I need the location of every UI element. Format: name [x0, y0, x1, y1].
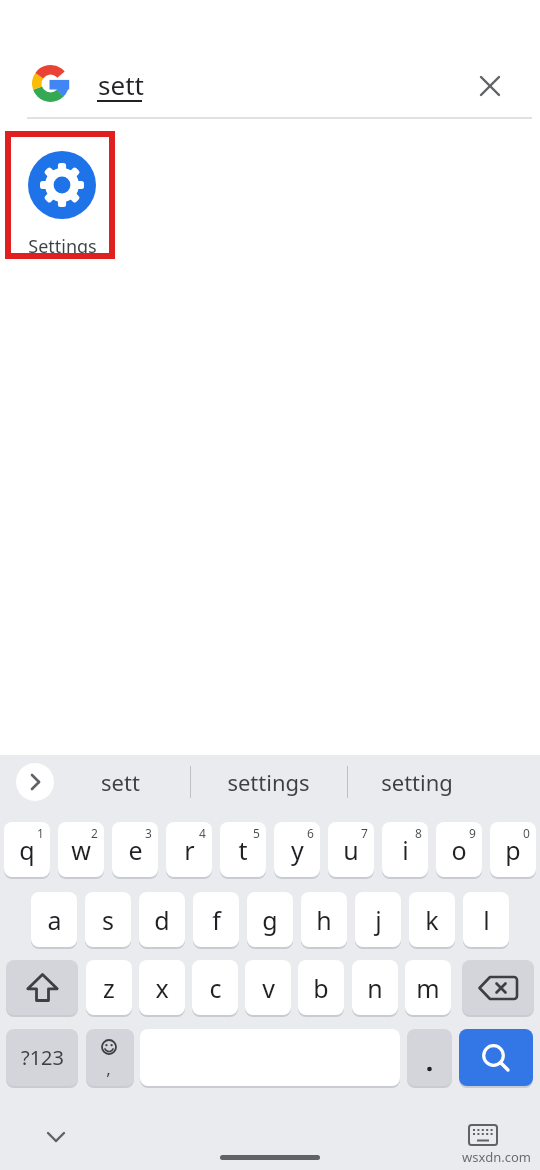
- button[interactable]: q: [4, 822, 50, 877]
- staticText: d: [154, 903, 170, 937]
- button[interactable]: ?123: [6, 1029, 78, 1086]
- button[interactable]: setting: [347, 760, 487, 804]
- staticText: q: [19, 833, 35, 867]
- staticText: z: [103, 971, 115, 1005]
- button[interactable]: [31, 64, 70, 104]
- staticText: 5: [253, 825, 260, 841]
- staticText: 0: [523, 825, 530, 841]
- staticText: f: [212, 903, 221, 937]
- button[interactable]: p: [490, 822, 536, 877]
- staticText: setting: [381, 767, 453, 797]
- button[interactable]: n: [352, 960, 398, 1015]
- button[interactable]: b: [298, 960, 344, 1015]
- staticText: ,: [106, 1057, 111, 1080]
- button[interactable]: r: [166, 822, 212, 877]
- staticText: y: [291, 833, 304, 867]
- staticText: c: [209, 971, 222, 1005]
- button[interactable]: x: [139, 960, 185, 1015]
- staticText: sett: [98, 67, 144, 102]
- staticText: ?123: [21, 1044, 64, 1071]
- button[interactable]: [44, 1130, 68, 1144]
- button[interactable]: e: [112, 822, 158, 877]
- staticText: o: [451, 833, 467, 867]
- staticText: e: [128, 833, 143, 867]
- button[interactable]: i: [382, 822, 428, 877]
- staticText: g: [262, 903, 278, 937]
- button[interactable]: t: [220, 822, 266, 877]
- button[interactable]: d: [139, 892, 185, 947]
- staticText: 4: [199, 825, 206, 841]
- button[interactable]: [28, 151, 96, 219]
- staticText: k: [425, 903, 439, 937]
- button[interactable]: m: [405, 960, 451, 1015]
- staticText: n: [367, 971, 383, 1005]
- button[interactable]: [462, 960, 534, 1015]
- staticText: 3: [145, 825, 152, 841]
- button[interactable]: a: [31, 892, 77, 947]
- staticText: 7: [361, 825, 368, 841]
- button[interactable]: j: [355, 892, 401, 947]
- staticText: l: [483, 903, 490, 937]
- button[interactable]: l: [463, 892, 509, 947]
- button[interactable]: k: [409, 892, 455, 947]
- staticText: sett: [101, 767, 140, 797]
- staticText: v: [262, 971, 275, 1005]
- button[interactable]: y: [274, 822, 320, 877]
- staticText: 9: [469, 825, 476, 841]
- staticText: w: [71, 833, 91, 867]
- staticText: b: [313, 971, 329, 1005]
- staticText: settings: [227, 767, 310, 797]
- staticText: t: [238, 833, 248, 867]
- button[interactable]: ,: [86, 1029, 134, 1086]
- button[interactable]: h: [301, 892, 347, 947]
- button[interactable]: sett: [70, 760, 170, 804]
- button[interactable]: g: [247, 892, 293, 947]
- staticText: h: [316, 903, 332, 937]
- button[interactable]: c: [192, 960, 238, 1015]
- staticText: p: [505, 833, 521, 867]
- button[interactable]: [468, 1124, 498, 1147]
- staticText: u: [343, 833, 359, 867]
- staticText: wsxdn.com: [462, 1148, 531, 1166]
- staticText: j: [375, 903, 382, 937]
- staticText: x: [155, 971, 169, 1005]
- button[interactable]: z: [86, 960, 132, 1015]
- button[interactable]: u: [328, 822, 374, 877]
- staticText: r: [184, 833, 195, 867]
- staticText: 6: [307, 825, 314, 841]
- button[interactable]: [459, 1029, 533, 1086]
- staticText: 8: [415, 825, 422, 841]
- button[interactable]: v: [245, 960, 291, 1015]
- staticText: i: [402, 833, 409, 867]
- staticText: 2: [91, 825, 98, 841]
- button[interactable]: [16, 763, 54, 801]
- button[interactable]: o: [436, 822, 482, 877]
- staticText: 1: [37, 825, 44, 841]
- button[interactable]: f: [193, 892, 239, 947]
- button[interactable]: [6, 960, 78, 1015]
- button[interactable]: settings: [198, 760, 338, 804]
- button[interactable]: w: [58, 822, 104, 877]
- button[interactable]: [478, 74, 502, 98]
- staticText: m: [416, 971, 440, 1005]
- button[interactable]: s: [85, 892, 131, 947]
- button[interactable]: [407, 1029, 452, 1086]
- staticText: s: [102, 903, 114, 937]
- staticText: a: [47, 903, 62, 937]
- staticText: Settings: [28, 234, 97, 258]
